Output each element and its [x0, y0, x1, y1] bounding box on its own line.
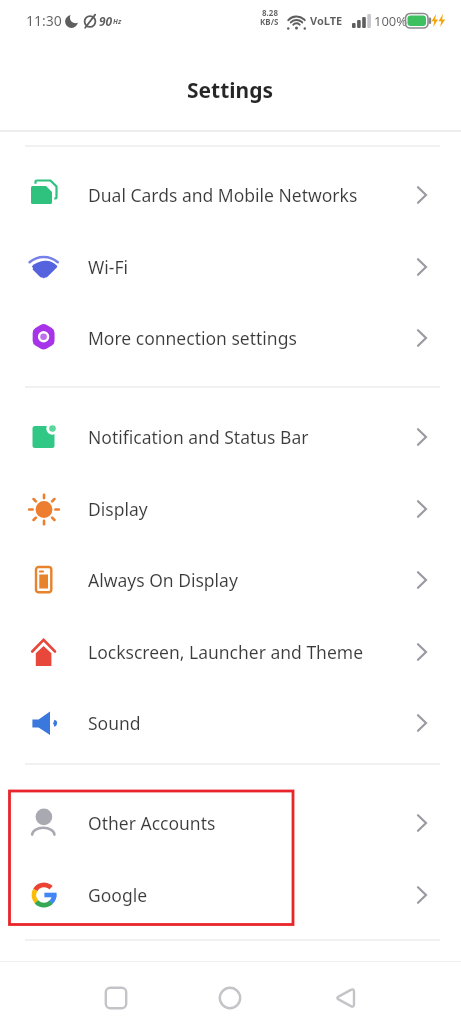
button[interactable]: Other Accounts	[0, 787, 461, 859]
button[interactable]: Google	[0, 859, 461, 931]
staticText: Sound	[88, 711, 141, 735]
staticText: Display	[88, 497, 148, 521]
staticText: Lockscreen, Launcher and Theme	[88, 640, 364, 664]
staticText: Notification and Status Bar	[88, 425, 309, 449]
button[interactable]	[93, 976, 138, 1020]
button[interactable]: Notification and Status Bar	[0, 401, 461, 473]
button[interactable]: Dual Cards and Mobile Networks	[0, 159, 461, 231]
staticText: Hz	[113, 17, 122, 27]
staticText: 8.28	[262, 7, 278, 18]
staticText: Wi-Fi	[88, 255, 129, 279]
staticText: 11:30	[26, 11, 62, 30]
button[interactable]: Always On Display	[0, 544, 461, 616]
staticText: Dual Cards and Mobile Networks	[88, 183, 358, 207]
staticText: Other Accounts	[88, 811, 216, 835]
staticText: KB/S	[260, 16, 279, 27]
button[interactable]: Wi-Fi	[0, 231, 461, 303]
button[interactable]: Display	[0, 473, 461, 545]
button[interactable]	[322, 976, 367, 1020]
staticText: Always On Display	[88, 568, 238, 592]
staticText: VoLTE	[310, 13, 343, 28]
button[interactable]: More connection settings	[0, 302, 461, 374]
button[interactable]	[207, 976, 253, 1020]
button[interactable]: Lockscreen, Launcher and Theme	[0, 616, 461, 688]
staticText: 100%	[374, 12, 408, 30]
button[interactable]: Sound	[0, 687, 461, 759]
staticText: More connection settings	[88, 326, 297, 350]
staticText: Settings	[187, 76, 274, 105]
staticText: 90	[99, 13, 113, 29]
staticText: Google	[88, 883, 148, 907]
